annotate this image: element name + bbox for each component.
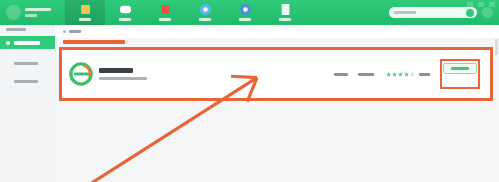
button[interactable] — [0, 57, 55, 69]
button[interactable]: Toolbox — [265, 0, 305, 25]
button[interactable]: Account — [6, 5, 21, 20]
button[interactable] — [62, 50, 490, 98]
button[interactable]: Software — [65, 0, 105, 25]
button[interactable] — [389, 7, 477, 18]
button[interactable] — [0, 75, 55, 87]
button[interactable] — [0, 36, 55, 49]
button[interactable] — [443, 63, 477, 74]
button[interactable]: Ranking — [145, 0, 185, 25]
button[interactable]: More — [482, 7, 493, 18]
button[interactable]: Discover — [185, 0, 225, 25]
button[interactable]: Games — [105, 0, 145, 25]
button[interactable]: Manage — [225, 0, 265, 25]
